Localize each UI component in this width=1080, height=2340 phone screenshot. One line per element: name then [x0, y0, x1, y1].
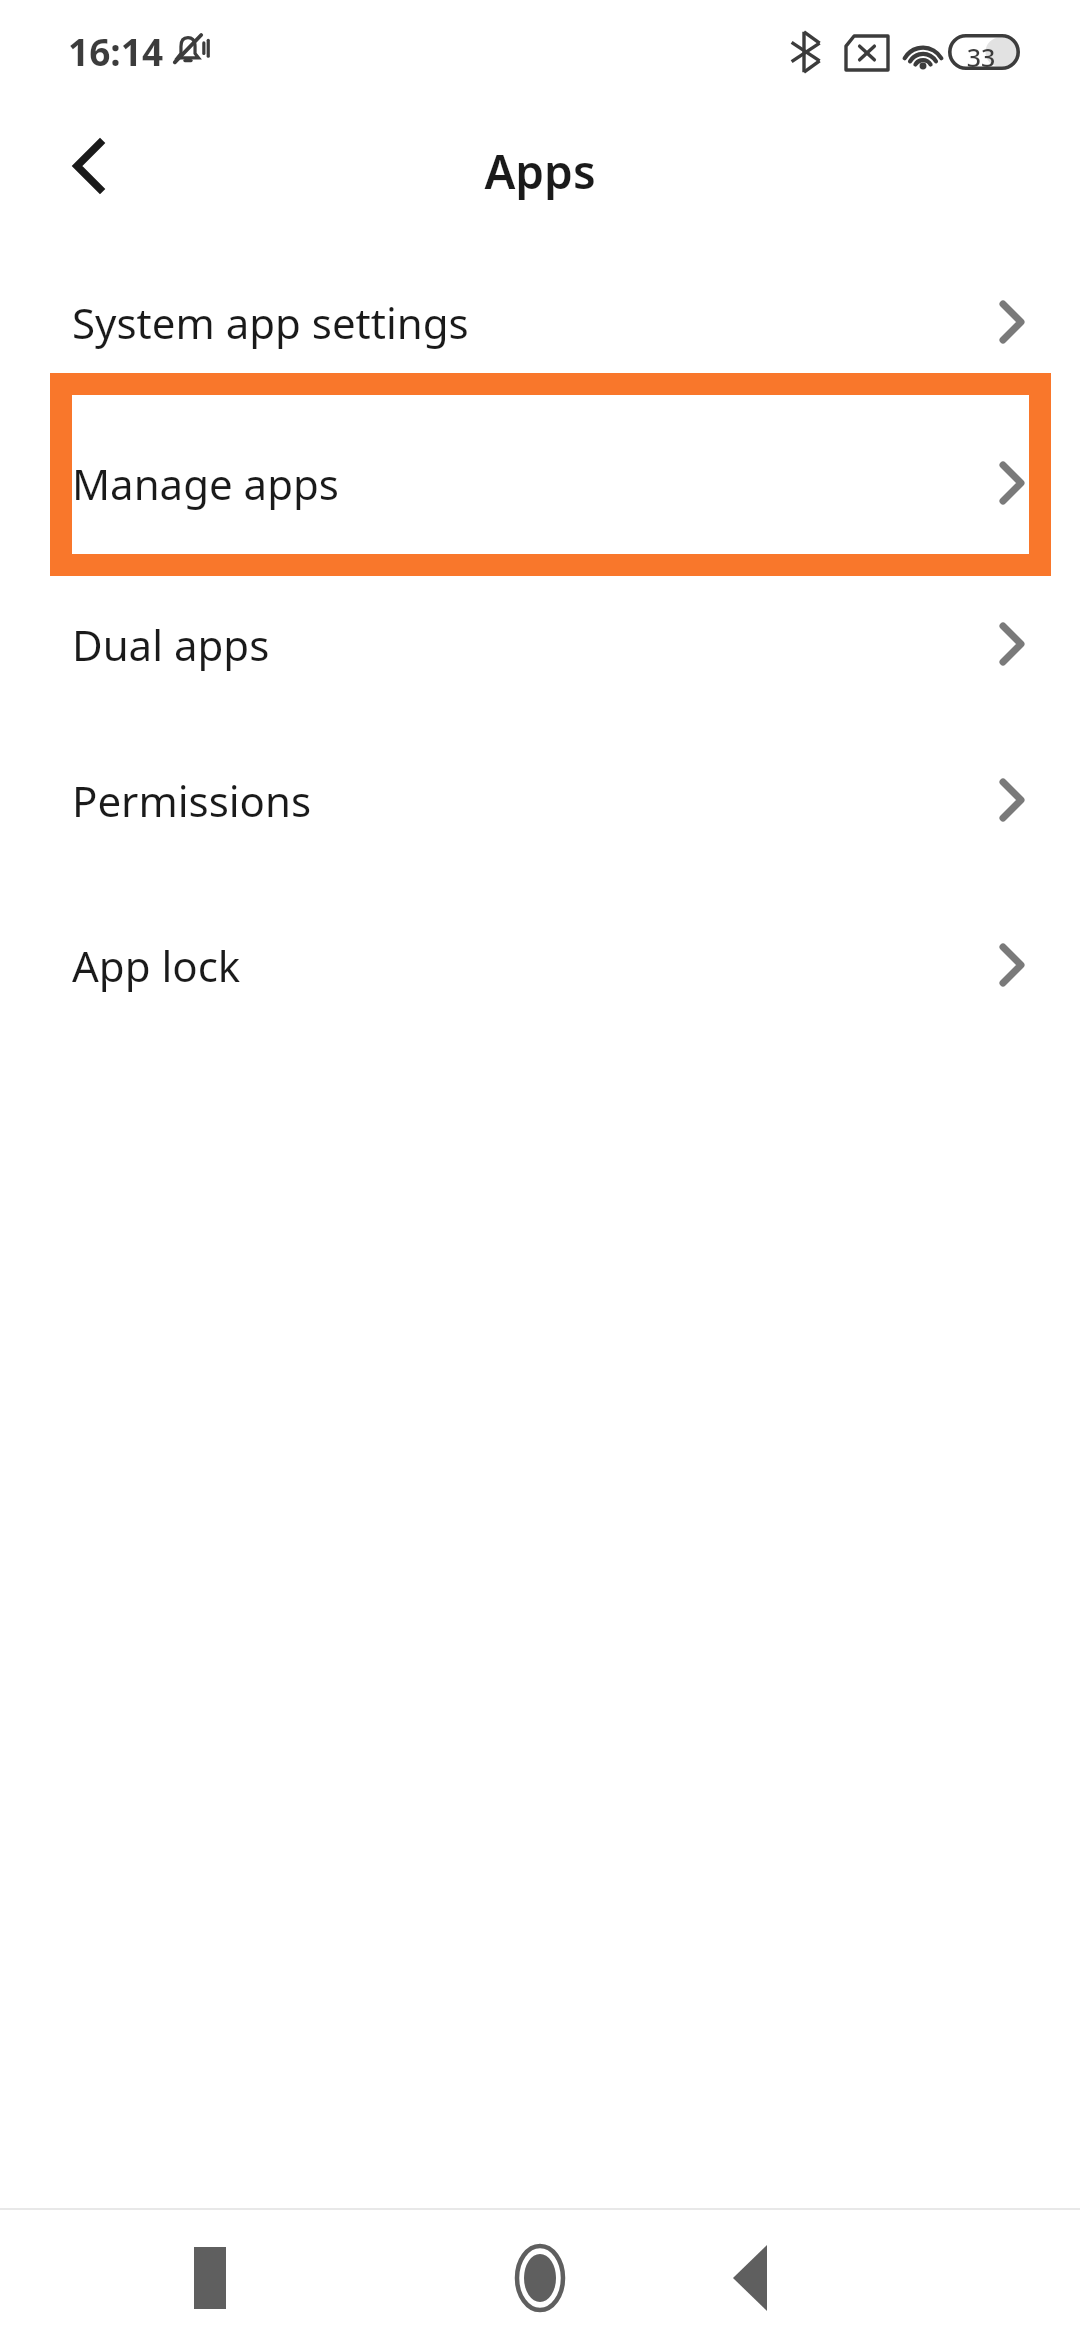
button[interactable]: Manage apps	[0, 404, 1080, 562]
button[interactable]: Recent apps	[150, 2228, 270, 2328]
button[interactable]: System app settings	[0, 243, 1080, 401]
button[interactable]: Dual apps	[0, 565, 1080, 723]
staticText: 16:14	[68, 26, 164, 76]
button[interactable]: Home	[480, 2228, 600, 2328]
staticText: Permissions	[72, 772, 1000, 829]
staticText: Apps	[0, 140, 1080, 203]
button[interactable]: Permissions	[0, 721, 1080, 879]
staticText: System app settings	[72, 294, 1000, 351]
button[interactable]: Back	[34, 126, 142, 206]
staticText: Manage apps	[72, 455, 1000, 512]
button[interactable]: Back	[690, 2228, 810, 2328]
staticText: Dual apps	[72, 616, 1000, 673]
staticText: 33	[959, 40, 1003, 74]
staticText: App lock	[72, 937, 1000, 994]
button[interactable]: App lock	[0, 886, 1080, 1044]
